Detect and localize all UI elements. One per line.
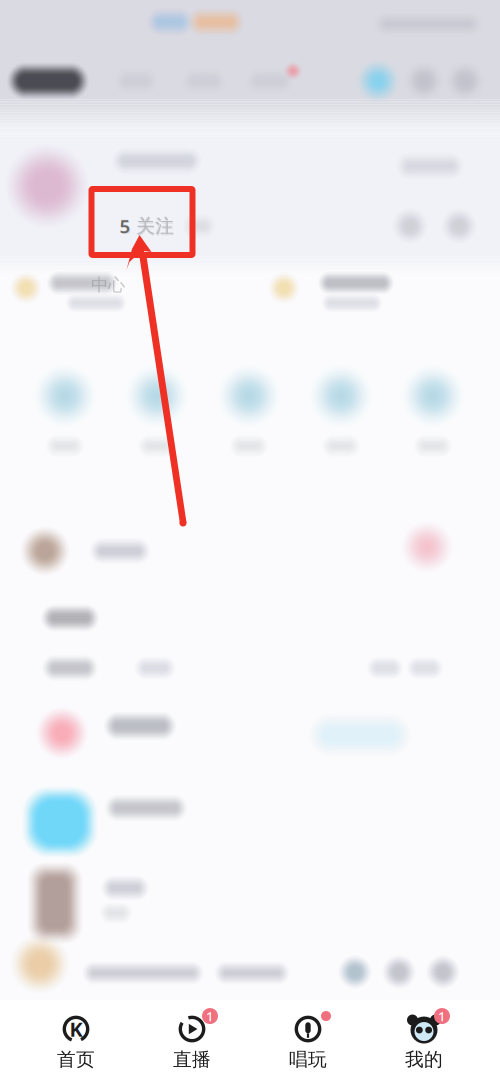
staticText: 唱玩 (289, 1048, 327, 1071)
staticText: 关注 (136, 214, 174, 237)
staticText: 5 关注 (119, 213, 173, 238)
staticText: 我的 (405, 1048, 443, 1071)
staticText: 1 (438, 1007, 446, 1025)
staticText: 5 关注 (121, 214, 175, 239)
button[interactable]: 唱玩 (250, 999, 366, 1084)
staticText: 1 (206, 1007, 214, 1025)
staticText: 直播 (173, 1048, 211, 1071)
button[interactable]: K (18, 999, 134, 1084)
button[interactable]: 1 (134, 999, 250, 1084)
staticText: 首页 (57, 1048, 95, 1071)
staticText: 5 (119, 214, 130, 238)
staticText: K (69, 1016, 82, 1042)
staticText: 中心 (91, 274, 125, 296)
button[interactable]: 1 (366, 999, 482, 1084)
